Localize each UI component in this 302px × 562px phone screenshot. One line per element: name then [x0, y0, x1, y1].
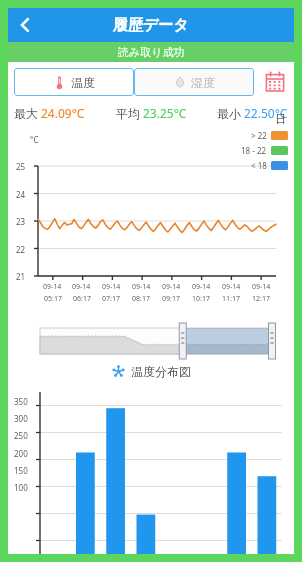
- staticText: 350: [14, 396, 28, 407]
- staticText: 300: [14, 413, 28, 424]
- staticText: 200: [14, 448, 28, 459]
- staticText: 09-14: [222, 282, 241, 292]
- staticText: 日: [275, 112, 286, 126]
- button[interactable]: Day: [275, 112, 286, 126]
- staticText: 08:17: [132, 294, 150, 304]
- staticText: 平均: [116, 106, 140, 121]
- staticText: 読み取り成功: [118, 45, 185, 59]
- staticText: 11:17: [222, 294, 240, 304]
- button[interactable]: 湿度: [134, 68, 254, 96]
- staticText: 10:17: [192, 294, 210, 304]
- staticText: < 18: [251, 160, 267, 171]
- staticText: 湿度: [191, 75, 215, 90]
- button[interactable]: Back: [8, 8, 42, 42]
- staticText: 09-14: [132, 282, 151, 292]
- staticText: 150: [14, 465, 28, 476]
- staticText: 21: [16, 271, 26, 282]
- staticText: 07:17: [102, 294, 120, 304]
- staticText: 09-14: [252, 282, 271, 292]
- staticText: 09-14: [102, 282, 121, 292]
- staticText: 22.50°C: [244, 105, 288, 121]
- button[interactable]: Select date: [262, 69, 288, 95]
- staticText: 温度: [71, 75, 95, 90]
- staticText: 250: [14, 430, 28, 441]
- staticText: 22: [16, 244, 26, 255]
- staticText: 25: [16, 161, 26, 172]
- staticText: 最小: [217, 106, 241, 121]
- staticText: > 22: [251, 130, 267, 141]
- button[interactable]: 温度: [14, 68, 134, 96]
- staticText: 履歴データ: [113, 16, 189, 35]
- staticText: 09-14: [43, 282, 62, 292]
- staticText: 09-14: [162, 282, 181, 292]
- staticText: 24: [16, 189, 26, 200]
- staticText: 09-14: [192, 282, 211, 292]
- staticText: 最大: [14, 106, 38, 121]
- staticText: 05:17: [44, 294, 62, 304]
- staticText: 23: [16, 216, 26, 227]
- staticText: 06:17: [73, 294, 91, 304]
- staticText: 100: [14, 482, 28, 493]
- staticText: 23.25°C: [143, 105, 187, 121]
- staticText: 18 - 22: [241, 145, 267, 156]
- staticText: 24.09°C: [41, 105, 85, 121]
- staticText: 09:17: [162, 294, 180, 304]
- staticText: 12:17: [252, 294, 270, 304]
- staticText: 温度分布図: [131, 364, 191, 379]
- staticText: 09-14: [72, 282, 91, 292]
- staticText: °C: [30, 134, 39, 145]
